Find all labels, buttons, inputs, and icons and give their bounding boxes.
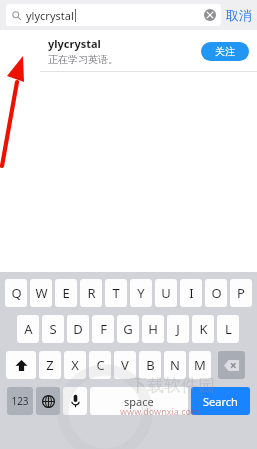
staticText: G (123, 320, 133, 338)
button[interactable]: Y (130, 279, 152, 307)
button[interactable]: A (17, 315, 39, 343)
staticText: S (49, 320, 57, 338)
button[interactable]: Q (5, 279, 27, 307)
button[interactable]: H (142, 315, 164, 343)
button[interactable]: P (230, 279, 252, 307)
staticText: 正在学习英语。 (48, 53, 118, 66)
button[interactable]: Backspace (218, 351, 245, 379)
button[interactable]: B (139, 351, 161, 379)
staticText: H (148, 320, 158, 338)
button[interactable]: Search (191, 387, 250, 415)
button[interactable]: 取消 (226, 0, 252, 30)
button[interactable]: T (105, 279, 127, 307)
button[interactable]: W (30, 279, 52, 307)
button[interactable]: K (192, 315, 214, 343)
staticText: X (71, 356, 79, 374)
button[interactable]: N (164, 351, 186, 379)
button[interactable]: X (64, 351, 86, 379)
button[interactable]: D (67, 315, 89, 343)
staticText: Search (203, 394, 238, 409)
staticText: K (199, 320, 208, 338)
staticText: I (189, 284, 194, 302)
staticText: ylycrystal (48, 36, 101, 51)
staticText: 关注 (215, 45, 235, 58)
staticText: A (24, 320, 33, 338)
button[interactable]: U (155, 279, 177, 307)
button[interactable]: R (80, 279, 102, 307)
staticText: Q (11, 284, 22, 302)
staticText: F (100, 320, 107, 338)
staticText: Y (137, 284, 145, 302)
button[interactable]: 123 (7, 387, 33, 415)
staticText: 下载软件园 (130, 375, 215, 396)
button[interactable]: J (167, 315, 189, 343)
staticText: 取消 (226, 7, 252, 23)
staticText: N (170, 356, 180, 374)
staticText: R (87, 284, 96, 302)
button[interactable]: Shift (6, 351, 36, 379)
staticText: E (62, 284, 70, 302)
button[interactable]: I (180, 279, 202, 307)
button[interactable]: O (205, 279, 227, 307)
staticText: M (194, 356, 206, 374)
button[interactable]: Z (39, 351, 61, 379)
button[interactable]: space (90, 387, 188, 415)
button[interactable]: S (42, 315, 64, 343)
staticText: P (237, 284, 245, 302)
staticText: space (124, 394, 154, 409)
button[interactable]: F (92, 315, 114, 343)
staticText: U (161, 284, 171, 302)
staticText: www.downxia.com (120, 405, 200, 417)
button[interactable]: M (189, 351, 211, 379)
button[interactable]: Switch keyboard language (36, 387, 60, 415)
button[interactable]: G (117, 315, 139, 343)
staticText: L (225, 320, 232, 338)
button[interactable]: Clear text (204, 9, 216, 21)
staticText: J (176, 320, 180, 338)
button[interactable]: E (55, 279, 77, 307)
button[interactable]: ylycrystal (0, 30, 257, 72)
staticText: B (146, 356, 155, 374)
button[interactable]: Voice input (63, 387, 87, 415)
button[interactable]: C (89, 351, 111, 379)
staticText: O (211, 284, 222, 302)
button[interactable]: ylycrystal (6, 4, 221, 26)
staticText: ylycrystal (26, 8, 74, 23)
staticText: Z (46, 356, 54, 374)
button[interactable]: L (217, 315, 239, 343)
button[interactable]: V (114, 351, 136, 379)
staticText: W (35, 284, 48, 302)
staticText: T (112, 284, 120, 302)
staticText: V (121, 356, 129, 374)
staticText: C (96, 356, 105, 374)
button[interactable]: 关注 (201, 42, 249, 61)
staticText: 123 (11, 394, 29, 408)
staticText: D (73, 320, 83, 338)
